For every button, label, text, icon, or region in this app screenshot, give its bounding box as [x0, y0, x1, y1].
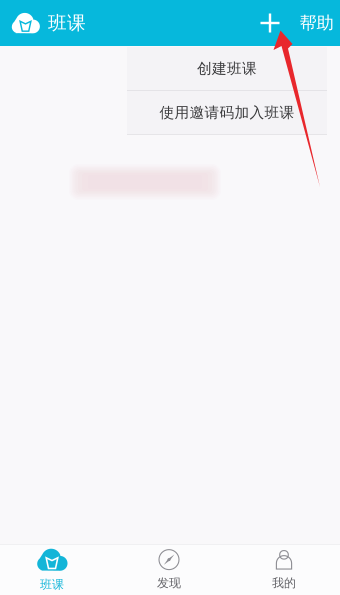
button[interactable]: 发现	[110, 545, 228, 595]
button[interactable]: 帮助	[296, 0, 337, 46]
button[interactable]: 使用邀请码加入班课	[127, 91, 327, 134]
staticText: 我的	[272, 576, 296, 590]
button[interactable]: Add	[251, 0, 289, 46]
staticText: 班课	[48, 11, 86, 34]
staticText: 创建班课	[197, 59, 257, 77]
button[interactable]: 创建班课	[127, 47, 327, 90]
staticText: 发现	[157, 576, 181, 590]
button[interactable]: 我的	[228, 545, 340, 595]
staticText: 使用邀请码加入班课	[159, 103, 294, 121]
staticText: 帮助	[299, 12, 333, 34]
button[interactable]: 班课	[0, 545, 104, 595]
staticText: 班课	[40, 577, 64, 592]
